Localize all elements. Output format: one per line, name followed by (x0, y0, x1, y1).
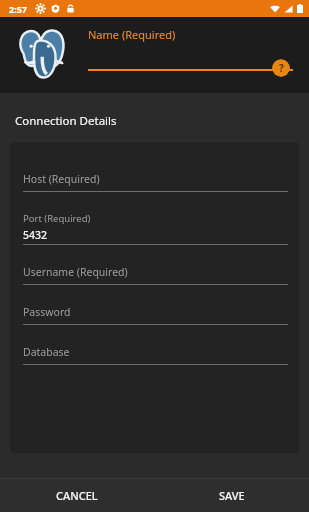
button[interactable]: Database (23, 345, 288, 365)
staticText: Advanced Options (15, 481, 114, 497)
staticText: Host (Required) (23, 172, 100, 186)
staticText: CANCEL (56, 488, 98, 503)
staticText: Username (Required) (23, 265, 128, 279)
button[interactable]: Host (Required) (23, 172, 288, 192)
staticText: Database (23, 345, 70, 359)
button[interactable]: Username (Required) (23, 265, 288, 285)
button[interactable]: Help (272, 59, 290, 77)
staticText: Password (23, 305, 71, 319)
staticText: Port (Required) (23, 212, 91, 225)
button[interactable]: CANCEL (0, 479, 154, 512)
button[interactable]: Port (Required) (23, 212, 288, 245)
other: PostgreSQL logo (12, 23, 70, 81)
staticText: Connection Details (15, 113, 117, 129)
staticText: 5432 (23, 228, 48, 242)
button[interactable]: SAVE (154, 479, 309, 512)
button[interactable]: Password (23, 305, 288, 325)
staticText: 2:57 (9, 3, 27, 15)
staticText: SAVE (219, 488, 245, 503)
staticText: ? (279, 61, 284, 75)
staticText: Name (Required) (88, 27, 176, 42)
